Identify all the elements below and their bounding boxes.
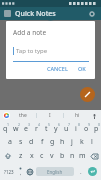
staticText: i xyxy=(75,124,77,134)
staticText: k xyxy=(80,137,84,147)
staticText: 5 xyxy=(48,122,51,127)
button[interactable]: a xyxy=(4,135,15,149)
button[interactable]: s xyxy=(15,135,26,149)
staticText: r xyxy=(35,124,38,134)
button[interactable]: Google xyxy=(3,112,10,119)
button[interactable]: ?123 xyxy=(2,164,16,179)
button[interactable]: 3 xyxy=(21,121,31,135)
button[interactable]: 6 xyxy=(51,121,61,135)
staticText: q xyxy=(3,124,8,134)
staticText: p xyxy=(94,124,99,134)
button[interactable]: 4 xyxy=(31,121,41,135)
staticText: 4 xyxy=(38,122,41,127)
staticText: w xyxy=(13,124,19,134)
staticText: d xyxy=(29,137,34,147)
button[interactable]: m xyxy=(77,149,87,163)
staticText: u xyxy=(64,124,69,134)
staticText: 2 xyxy=(18,122,21,127)
staticText: 3 xyxy=(28,122,31,127)
button[interactable]: n xyxy=(67,149,77,163)
staticText: z xyxy=(19,151,23,161)
staticText: OK xyxy=(78,65,86,72)
staticText: g xyxy=(50,137,55,147)
button[interactable]: Shift xyxy=(0,149,15,163)
button[interactable]: Backspace xyxy=(87,149,101,163)
staticText: , xyxy=(20,170,22,177)
staticText: f xyxy=(41,137,44,147)
button[interactable]: g xyxy=(47,135,57,149)
button[interactable]: c xyxy=(37,149,47,163)
staticText: Quick Notes xyxy=(15,9,56,19)
button[interactable]: 1 xyxy=(0,121,11,135)
staticText: y xyxy=(54,124,58,134)
button[interactable]: f xyxy=(37,135,47,149)
button[interactable]: Settings xyxy=(86,8,97,19)
staticText: o xyxy=(84,124,89,134)
button[interactable]: x xyxy=(26,149,37,163)
staticText: e xyxy=(24,124,28,134)
staticText: I xyxy=(49,112,51,119)
button[interactable]: Comma xyxy=(16,164,25,179)
staticText: 9 xyxy=(88,122,91,127)
button[interactable]: 5 xyxy=(41,121,51,135)
staticText: x xyxy=(30,151,34,161)
staticText: 6 xyxy=(58,122,61,127)
button[interactable]: l xyxy=(87,135,97,149)
staticText: l xyxy=(91,137,93,147)
button[interactable]: 0 xyxy=(91,121,101,135)
button[interactable]: k xyxy=(77,135,87,149)
button[interactable]: 8 xyxy=(71,121,81,135)
button[interactable]: Change language xyxy=(25,164,34,179)
staticText: 1 xyxy=(7,122,10,127)
staticText: b xyxy=(60,151,65,161)
button[interactable]: 2 xyxy=(11,121,21,135)
staticText: Add a note xyxy=(13,28,47,37)
button[interactable]: d xyxy=(26,135,37,149)
button[interactable]: Enter xyxy=(88,167,97,176)
button[interactable]: OK xyxy=(75,63,89,74)
button[interactable]: App icon xyxy=(4,10,11,17)
staticText: h xyxy=(60,137,65,147)
button[interactable]: Voice input xyxy=(90,112,98,120)
button[interactable]: English xyxy=(36,167,74,176)
staticText: . xyxy=(80,168,82,176)
staticText: s xyxy=(19,137,23,147)
button[interactable]: 7 xyxy=(61,121,71,135)
button[interactable]: b xyxy=(57,149,67,163)
button[interactable]: New note xyxy=(80,87,95,102)
button[interactable]: 9 xyxy=(81,121,91,135)
staticText: the xyxy=(19,112,27,119)
button[interactable]: Period xyxy=(76,164,85,179)
staticText: 0 xyxy=(98,122,101,127)
button[interactable]: z xyxy=(15,149,26,163)
staticText: 7 xyxy=(68,122,71,127)
button[interactable]: hi xyxy=(64,112,90,119)
staticText: 8 xyxy=(78,122,81,127)
staticText: ?123 xyxy=(4,169,14,175)
staticText: t xyxy=(45,124,48,134)
staticText: v xyxy=(50,151,54,161)
staticText: m xyxy=(79,151,86,161)
button[interactable]: I xyxy=(37,112,63,119)
staticText: CANCEL xyxy=(47,65,68,72)
button[interactable]: the xyxy=(10,112,36,119)
staticText: hi xyxy=(75,112,80,119)
button[interactable]: h xyxy=(57,135,67,149)
button[interactable]: v xyxy=(47,149,57,163)
staticText: c xyxy=(40,151,44,161)
staticText: a xyxy=(8,137,12,147)
staticText: English xyxy=(47,169,63,175)
staticText: n xyxy=(70,151,75,161)
staticText: j xyxy=(71,137,73,147)
staticText: Tap to type xyxy=(16,47,48,55)
button[interactable]: j xyxy=(67,135,77,149)
button[interactable]: CANCEL xyxy=(44,63,71,74)
